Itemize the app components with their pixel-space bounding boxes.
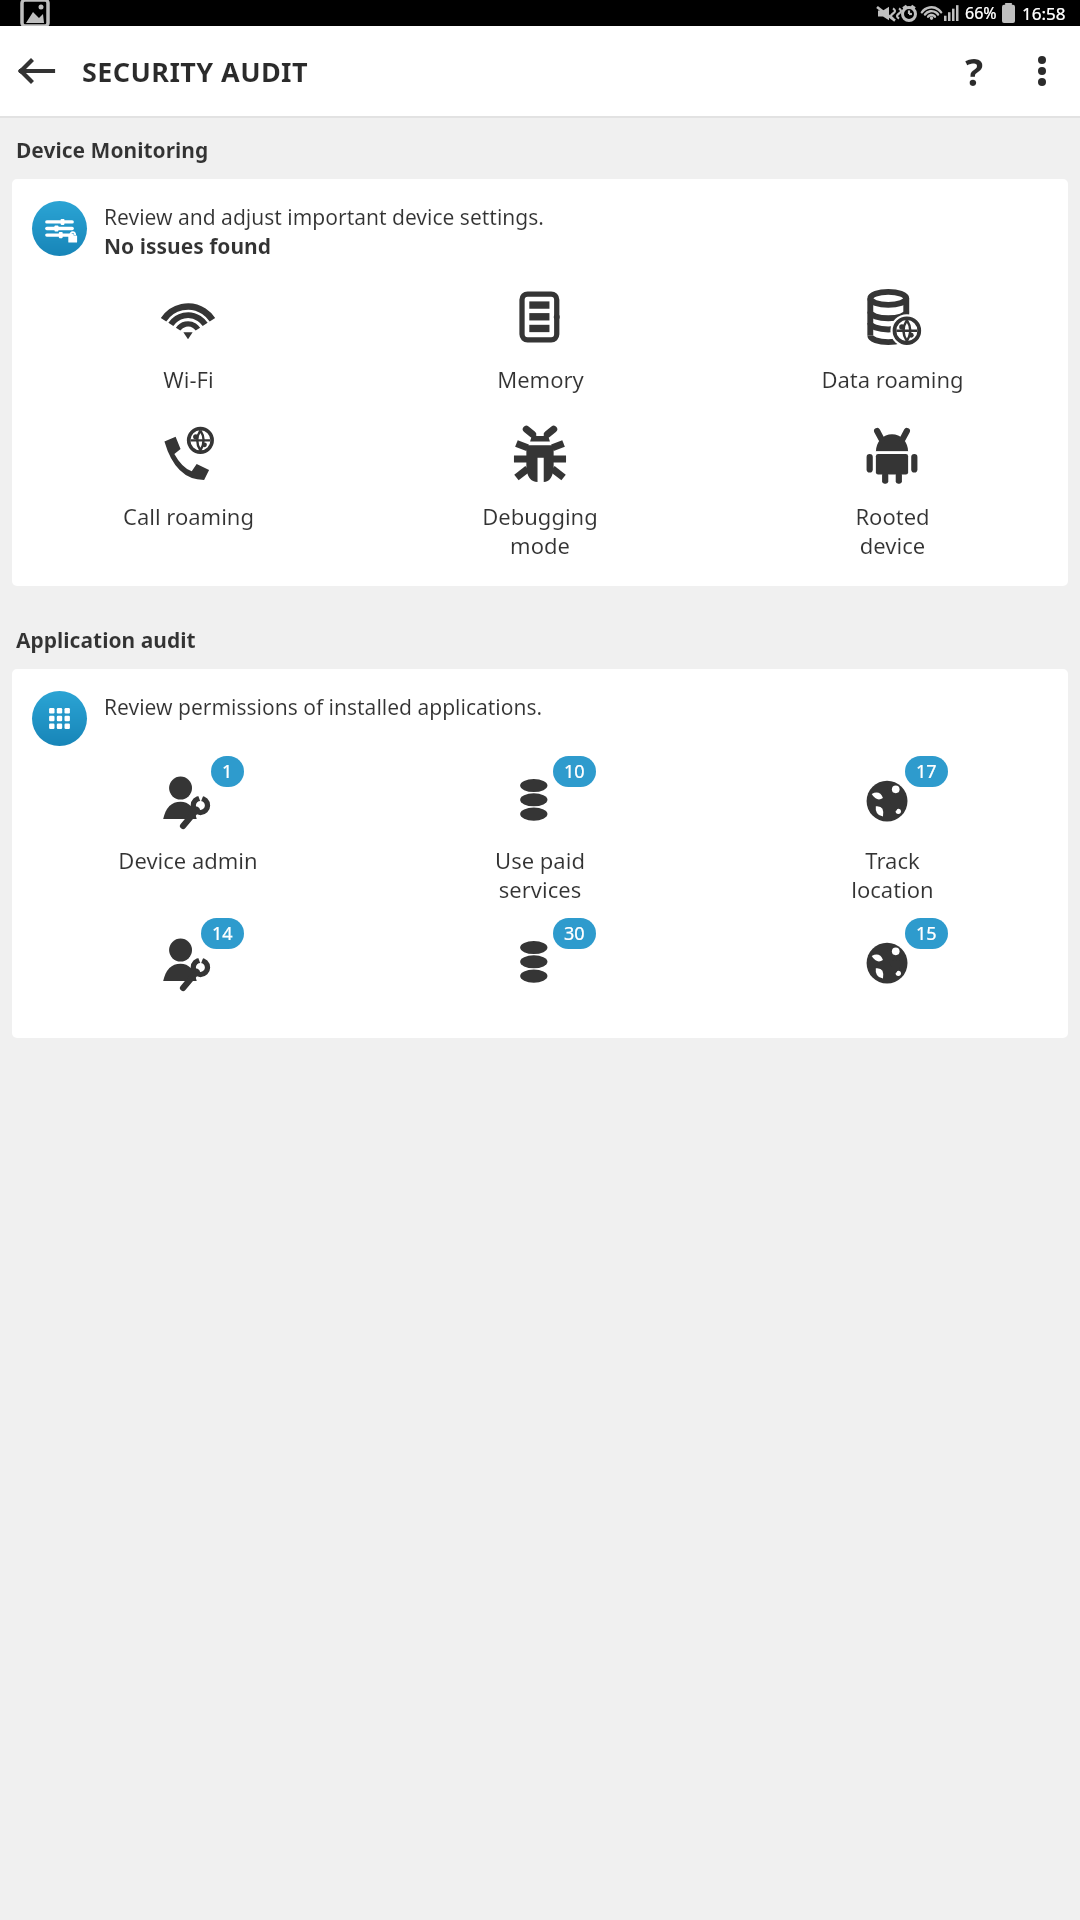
staticText: Application audit (16, 626, 196, 655)
staticText: 30 (564, 921, 585, 946)
button[interactable]: Rooted device (716, 416, 1068, 560)
staticText: Debugging mode (482, 501, 598, 560)
button[interactable]: Memory (364, 279, 716, 394)
staticText: Memory (497, 364, 584, 394)
staticText: Wi-Fi (163, 364, 214, 394)
button[interactable]: 17 (716, 760, 1068, 904)
button[interactable]: 14 (12, 922, 364, 998)
staticText: No issues found (104, 232, 272, 261)
button[interactable]: 1 (12, 760, 364, 875)
staticText: 15 (916, 921, 937, 946)
staticText: 66% (965, 2, 997, 24)
staticText: Track location (851, 845, 934, 904)
button[interactable]: Call roaming (12, 416, 364, 531)
button[interactable]: Help (938, 35, 1010, 107)
staticText: Device Monitoring (16, 136, 209, 165)
button[interactable]: Debugging mode (364, 416, 716, 560)
staticText: Call roaming (123, 501, 254, 531)
staticText: 16:58 (1022, 2, 1066, 25)
staticText: Data roaming (821, 364, 964, 394)
staticText: Use paid services (495, 845, 585, 904)
button[interactable]: Wi-Fi (12, 279, 364, 394)
staticText: Device admin (118, 845, 258, 875)
button[interactable]: 30 (364, 922, 716, 998)
button[interactable]: Back (0, 34, 74, 108)
staticText: 10 (564, 759, 585, 784)
staticText: SECURITY AUDIT (82, 53, 309, 90)
staticText: Review and adjust important device setti… (104, 203, 544, 232)
staticText: Review permissions of installed applicat… (104, 693, 543, 722)
staticText: 1 (222, 759, 233, 784)
button[interactable]: More options (1010, 39, 1074, 103)
staticText: 14 (212, 921, 233, 946)
staticText: ? (965, 45, 984, 97)
button[interactable]: Data roaming (716, 279, 1068, 394)
button[interactable]: 15 (716, 922, 1068, 998)
staticText: Rooted device (855, 501, 930, 560)
button[interactable]: 10 (364, 760, 716, 904)
staticText: 17 (916, 759, 937, 784)
